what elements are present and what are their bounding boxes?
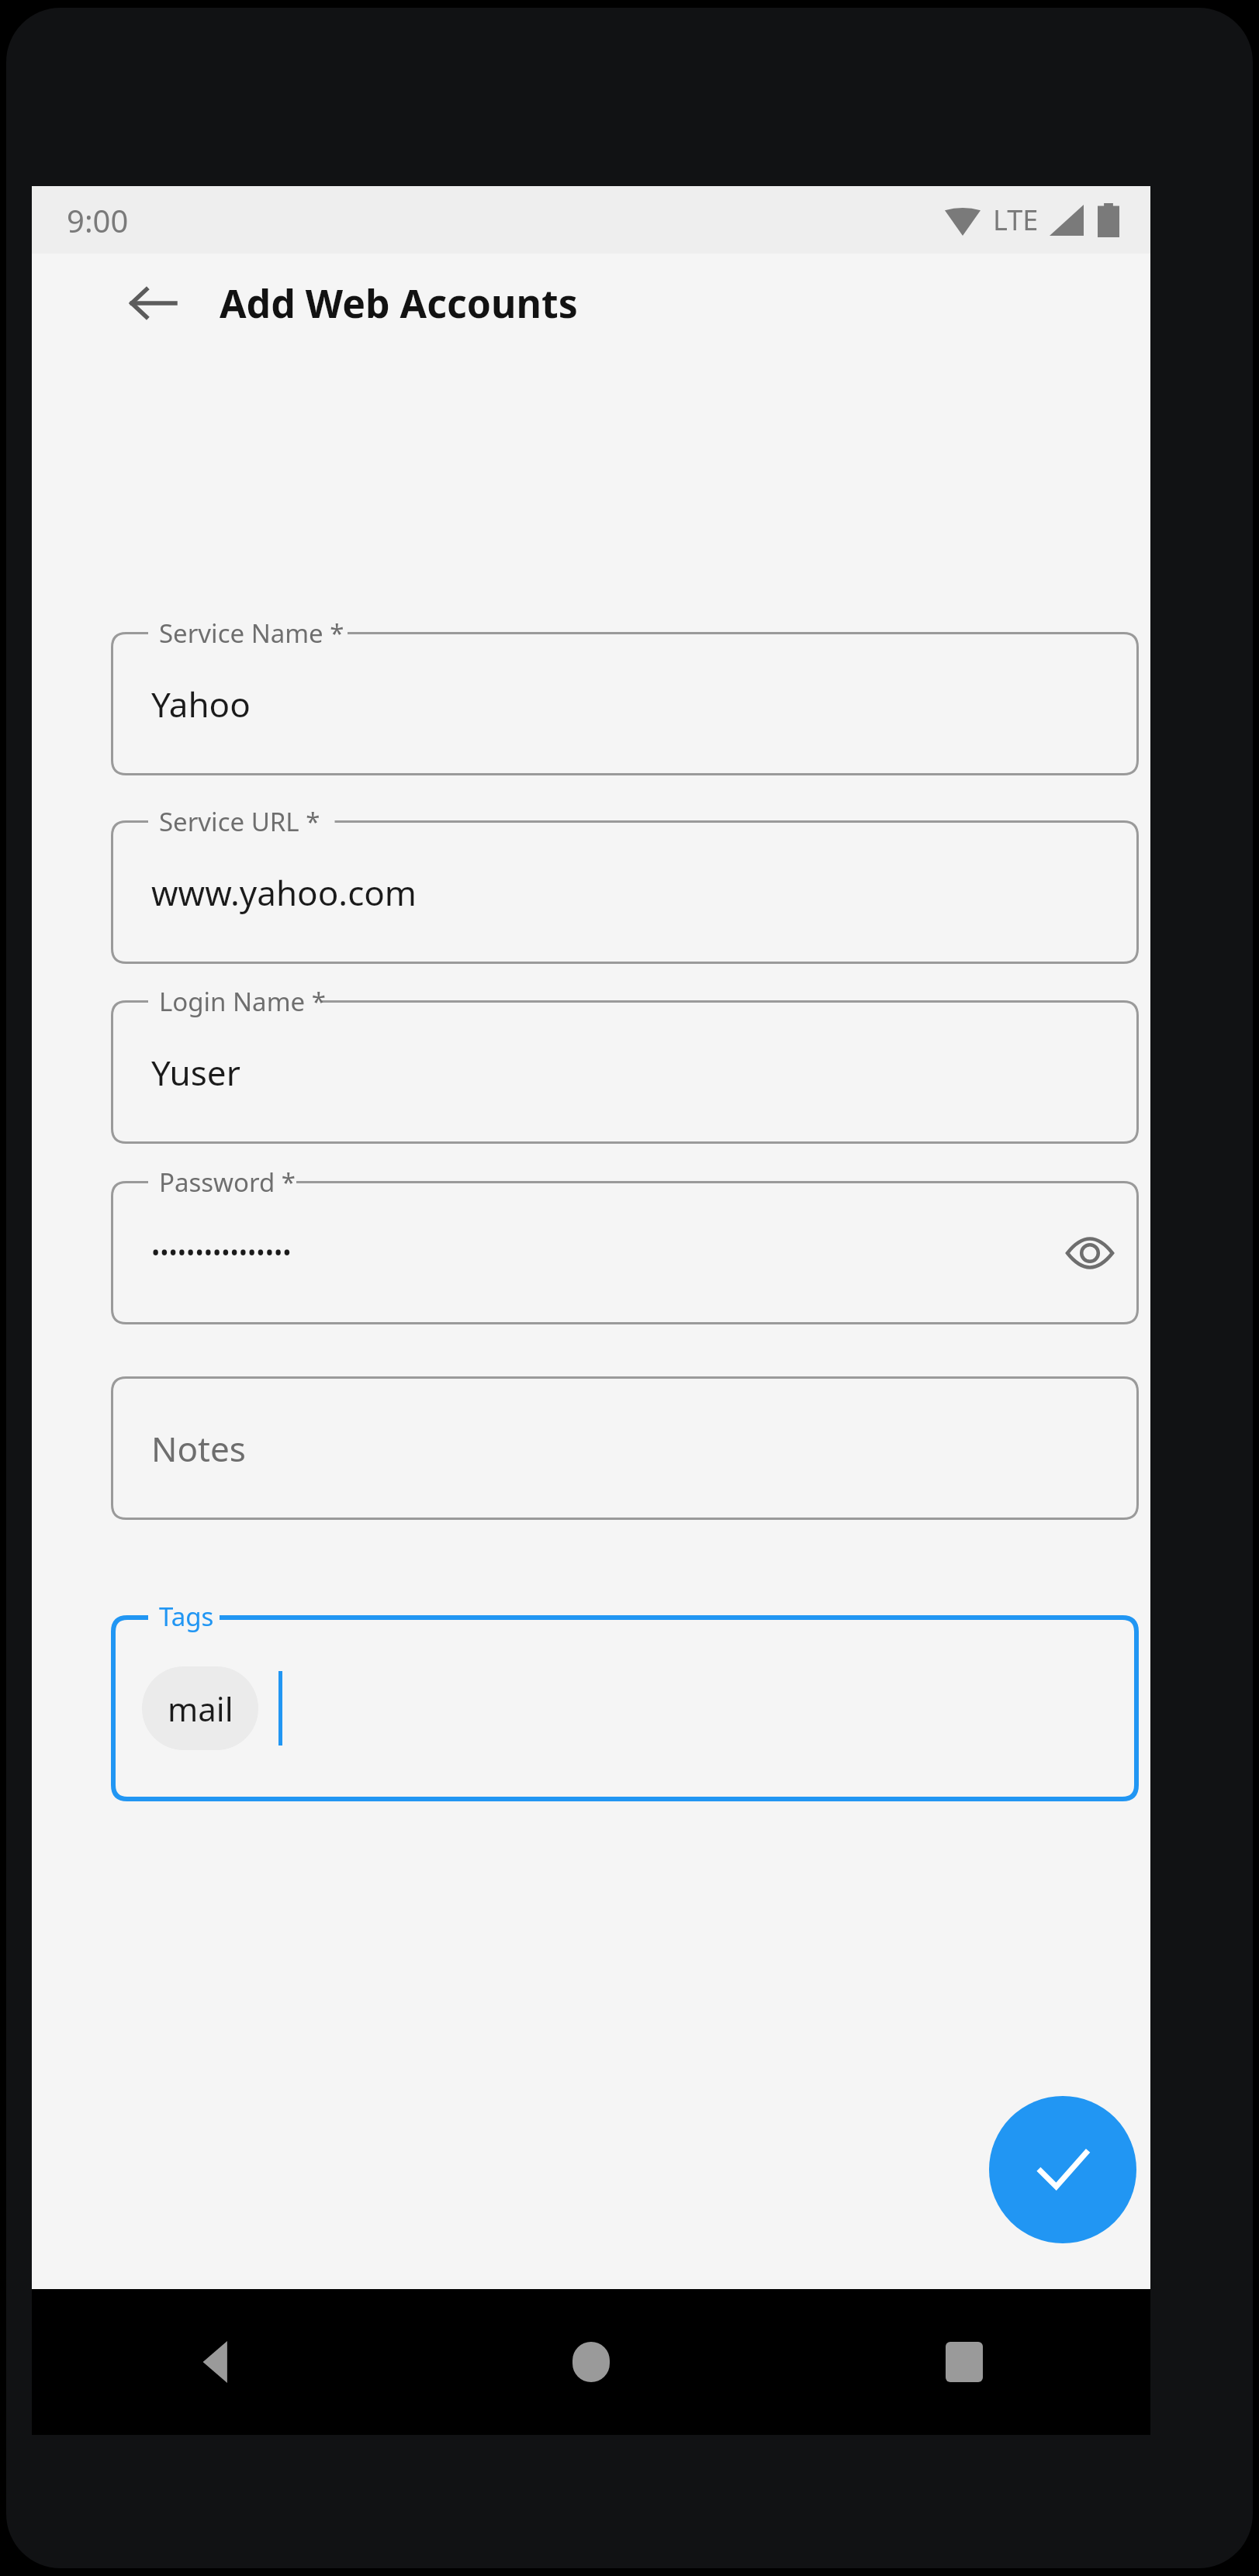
staticText: Tags: [159, 1599, 214, 1634]
button[interactable]: Save account: [989, 2096, 1136, 2243]
button[interactable]: Recents: [777, 2289, 1150, 2435]
staticText: mail: [168, 1687, 233, 1731]
staticText: 9:00: [67, 199, 129, 241]
staticText: ••••••••••••••••: [151, 1237, 292, 1269]
button[interactable]: Notes: [111, 1376, 1139, 1520]
button[interactable]: Home: [404, 2289, 777, 2435]
button[interactable]: Show password: [1055, 1218, 1125, 1288]
staticText: LTE: [993, 201, 1039, 239]
staticText: Yahoo: [151, 681, 251, 727]
staticText: Yuser: [151, 1049, 240, 1096]
staticText: Service URL *: [159, 804, 320, 839]
staticText: Service Name *: [159, 616, 344, 651]
button[interactable]: Yahoo: [111, 632, 1139, 775]
staticText: Add Web Accounts: [220, 277, 578, 330]
staticText: Password *: [159, 1165, 296, 1200]
button[interactable]: Tags: [111, 1615, 1139, 1801]
button[interactable]: Back: [32, 2289, 404, 2435]
button[interactable]: ••••••••••••••••: [111, 1181, 1139, 1324]
staticText: www.yahoo.com: [151, 869, 417, 916]
staticText: Login Name *: [159, 984, 326, 1019]
button[interactable]: Back: [116, 266, 190, 340]
button[interactable]: Yuser: [111, 1000, 1139, 1144]
button[interactable]: mail: [142, 1666, 258, 1750]
staticText: Notes: [151, 1425, 246, 1472]
button[interactable]: www.yahoo.com: [111, 820, 1139, 964]
